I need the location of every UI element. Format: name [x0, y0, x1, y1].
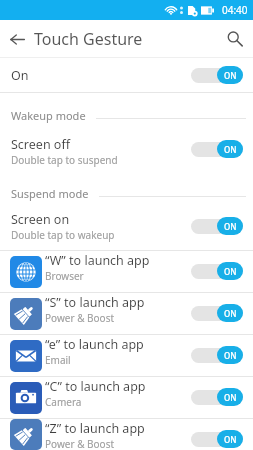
staticText: ON — [224, 350, 237, 361]
staticText: “Z” to launch app — [45, 420, 145, 437]
staticText: ON — [224, 266, 237, 277]
button[interactable]: “W” to launch app — [0, 251, 253, 292]
button[interactable]: On — [0, 58, 253, 92]
button[interactable]: Search — [217, 21, 253, 57]
button[interactable]: Toggle — [191, 217, 243, 235]
button[interactable]: “Z” to launch app — [0, 419, 253, 450]
staticText: Camera — [45, 395, 82, 409]
button[interactable]: Toggle — [191, 66, 243, 84]
staticText: Screen on — [11, 211, 70, 228]
button[interactable]: “C” to launch app — [0, 377, 253, 418]
button[interactable]: Screen on — [0, 206, 253, 250]
button[interactable]: Toggle — [191, 430, 243, 448]
staticText: Screen off — [11, 136, 71, 153]
staticText: Browser — [45, 269, 84, 283]
staticText: “e” to launch app — [45, 336, 144, 353]
staticText: Email — [45, 353, 71, 367]
button[interactable]: Toggle — [191, 346, 243, 364]
staticText: Wakeup mode — [11, 108, 86, 123]
button[interactable]: Toggle — [191, 262, 243, 280]
staticText: Double tap to wakeup — [11, 228, 115, 242]
staticText: Touch Gesture — [34, 28, 143, 50]
staticText: Power & Boost — [45, 311, 115, 325]
staticText: “W” to launch app — [45, 252, 150, 269]
staticText: ON — [224, 221, 237, 232]
staticText: On — [11, 67, 29, 84]
staticText: Power & Boost — [45, 437, 115, 450]
staticText: ON — [224, 144, 237, 155]
staticText: 04:40 — [222, 3, 248, 17]
staticText: ON — [224, 392, 237, 403]
button[interactable]: Back — [0, 22, 34, 56]
staticText: ON — [224, 308, 237, 319]
staticText: Suspend mode — [11, 186, 89, 201]
staticText: Double tap to suspend — [11, 153, 118, 167]
button[interactable]: Toggle — [191, 140, 243, 158]
button[interactable]: Screen off — [0, 129, 253, 170]
button[interactable]: Toggle — [191, 388, 243, 406]
staticText: “C” to launch app — [45, 378, 146, 395]
button[interactable]: “e” to launch app — [0, 335, 253, 376]
staticText: ON — [224, 434, 237, 445]
staticText: ON — [224, 70, 237, 81]
button[interactable]: “S” to launch app — [0, 293, 253, 334]
staticText: “S” to launch app — [45, 294, 145, 311]
button[interactable]: Toggle — [191, 304, 243, 322]
